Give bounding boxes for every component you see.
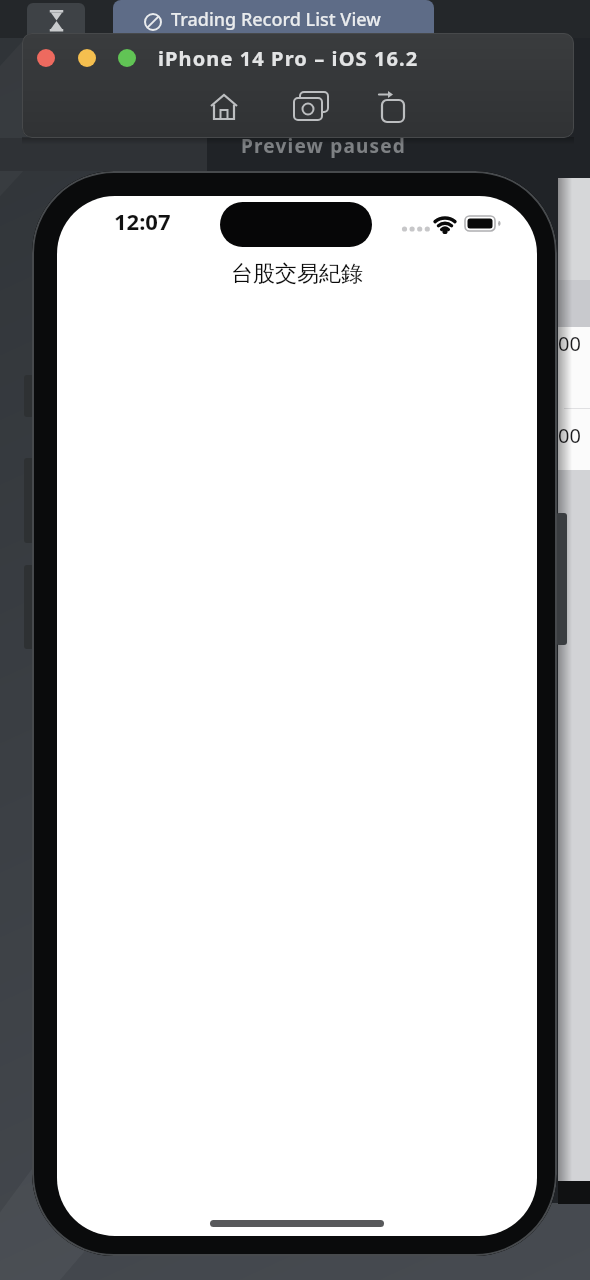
- button[interactable]: [118, 49, 136, 67]
- button[interactable]: [37, 49, 55, 67]
- staticText: 12:07: [114, 206, 171, 232]
- staticText: 台股交易紀錄: [231, 260, 363, 288]
- button[interactable]: [372, 89, 410, 125]
- button[interactable]: [292, 89, 330, 125]
- button[interactable]: [78, 49, 96, 67]
- staticText: 000: [558, 330, 590, 362]
- staticText: iPhone 14 Pro – iOS 16.2: [158, 45, 419, 72]
- button[interactable]: Trading Record List View: [113, 0, 434, 38]
- staticText: Trading Record List View: [171, 7, 381, 32]
- staticText: 000: [558, 422, 590, 454]
- button[interactable]: [27, 3, 85, 38]
- staticText: Preview paused: [241, 133, 407, 159]
- button[interactable]: [206, 89, 242, 125]
